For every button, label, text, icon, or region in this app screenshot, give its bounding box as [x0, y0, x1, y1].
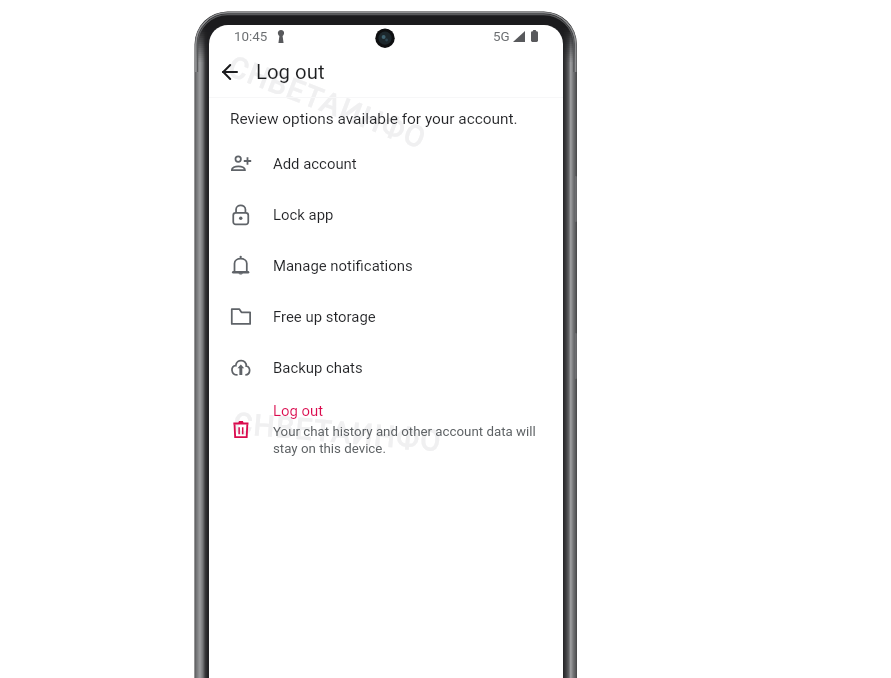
staticText: CHBETAИHФO: [224, 49, 432, 156]
staticText: Manage notifications: [273, 257, 413, 274]
button[interactable]: Log out: [209, 391, 563, 455]
button[interactable]: Add account: [209, 138, 563, 189]
staticText: Backup chats: [273, 359, 363, 376]
staticText: 10:45: [234, 29, 268, 45]
staticText: Log out: [256, 60, 325, 84]
button[interactable]: Back: [215, 60, 245, 84]
button[interactable]: Lock app: [209, 189, 563, 240]
staticText: 5G: [493, 29, 510, 45]
staticText: Log out: [273, 402, 324, 419]
button[interactable]: Free up storage: [209, 291, 563, 342]
staticText: Free up storage: [273, 308, 376, 325]
staticText: Add account: [273, 155, 357, 172]
staticText: Lock app: [273, 206, 334, 223]
staticText: Review options available for your accoun…: [230, 110, 518, 128]
button[interactable]: Manage notifications: [209, 240, 563, 291]
button[interactable]: Backup chats: [209, 342, 563, 393]
other: Alarm: [277, 30, 285, 43]
staticText: CHBETAИHФO: [232, 406, 444, 458]
staticText: Your chat history and other account data…: [273, 424, 555, 457]
